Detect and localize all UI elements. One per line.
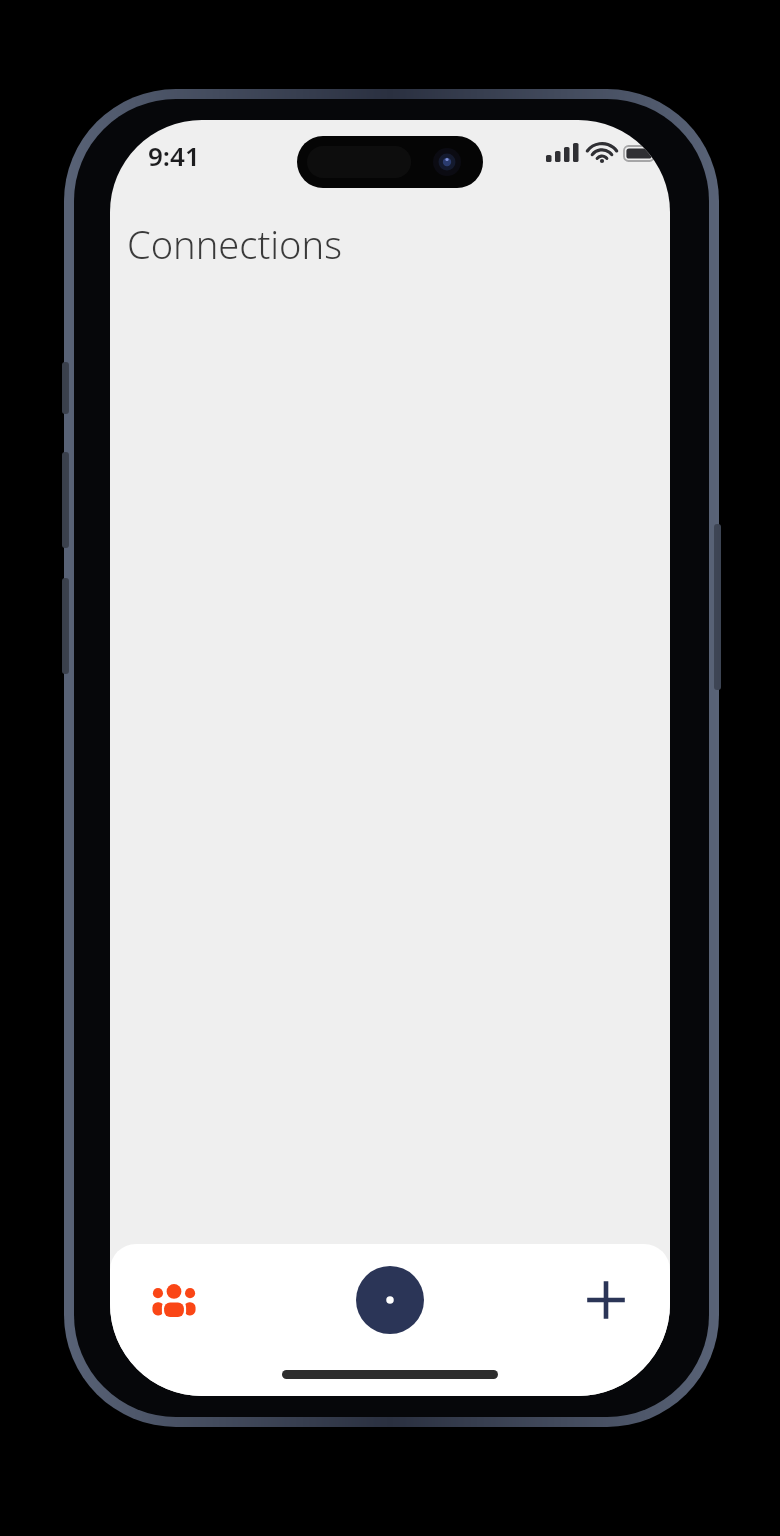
- staticText: 9:41: [148, 138, 200, 173]
- button[interactable]: Groups: [132, 1258, 216, 1342]
- button[interactable]: Add: [564, 1258, 648, 1342]
- button[interactable]: Record: [348, 1258, 432, 1342]
- staticText: Connections: [127, 218, 342, 270]
